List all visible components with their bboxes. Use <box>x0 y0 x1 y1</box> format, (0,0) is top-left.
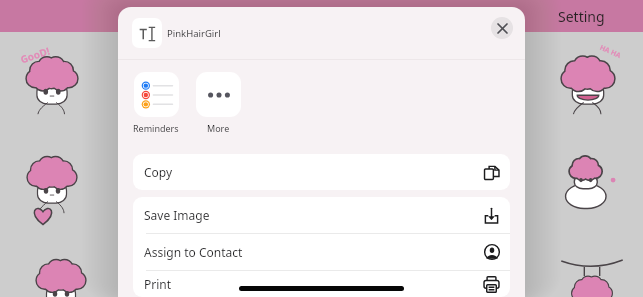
button[interactable]: Print <box>133 271 510 297</box>
staticText: Assign to Contact <box>144 244 243 260</box>
staticText: Setting <box>558 7 605 26</box>
button[interactable]: More <box>196 72 241 134</box>
staticText: Reminders <box>133 122 179 134</box>
staticText: PinkHairGirl <box>167 27 221 40</box>
staticText: GooD! <box>19 44 51 66</box>
button[interactable]: Save Image <box>133 197 510 233</box>
button[interactable]: Close <box>491 17 513 39</box>
staticText: Print <box>144 276 172 292</box>
staticText: HA HA <box>598 43 623 61</box>
staticText: More <box>207 122 230 134</box>
button[interactable]: Reminders <box>133 72 179 134</box>
staticText: Copy <box>144 164 173 180</box>
button[interactable]: Copy <box>133 154 510 190</box>
button[interactable]: Assign to Contact <box>133 234 510 270</box>
staticText: Save Image <box>144 207 210 223</box>
